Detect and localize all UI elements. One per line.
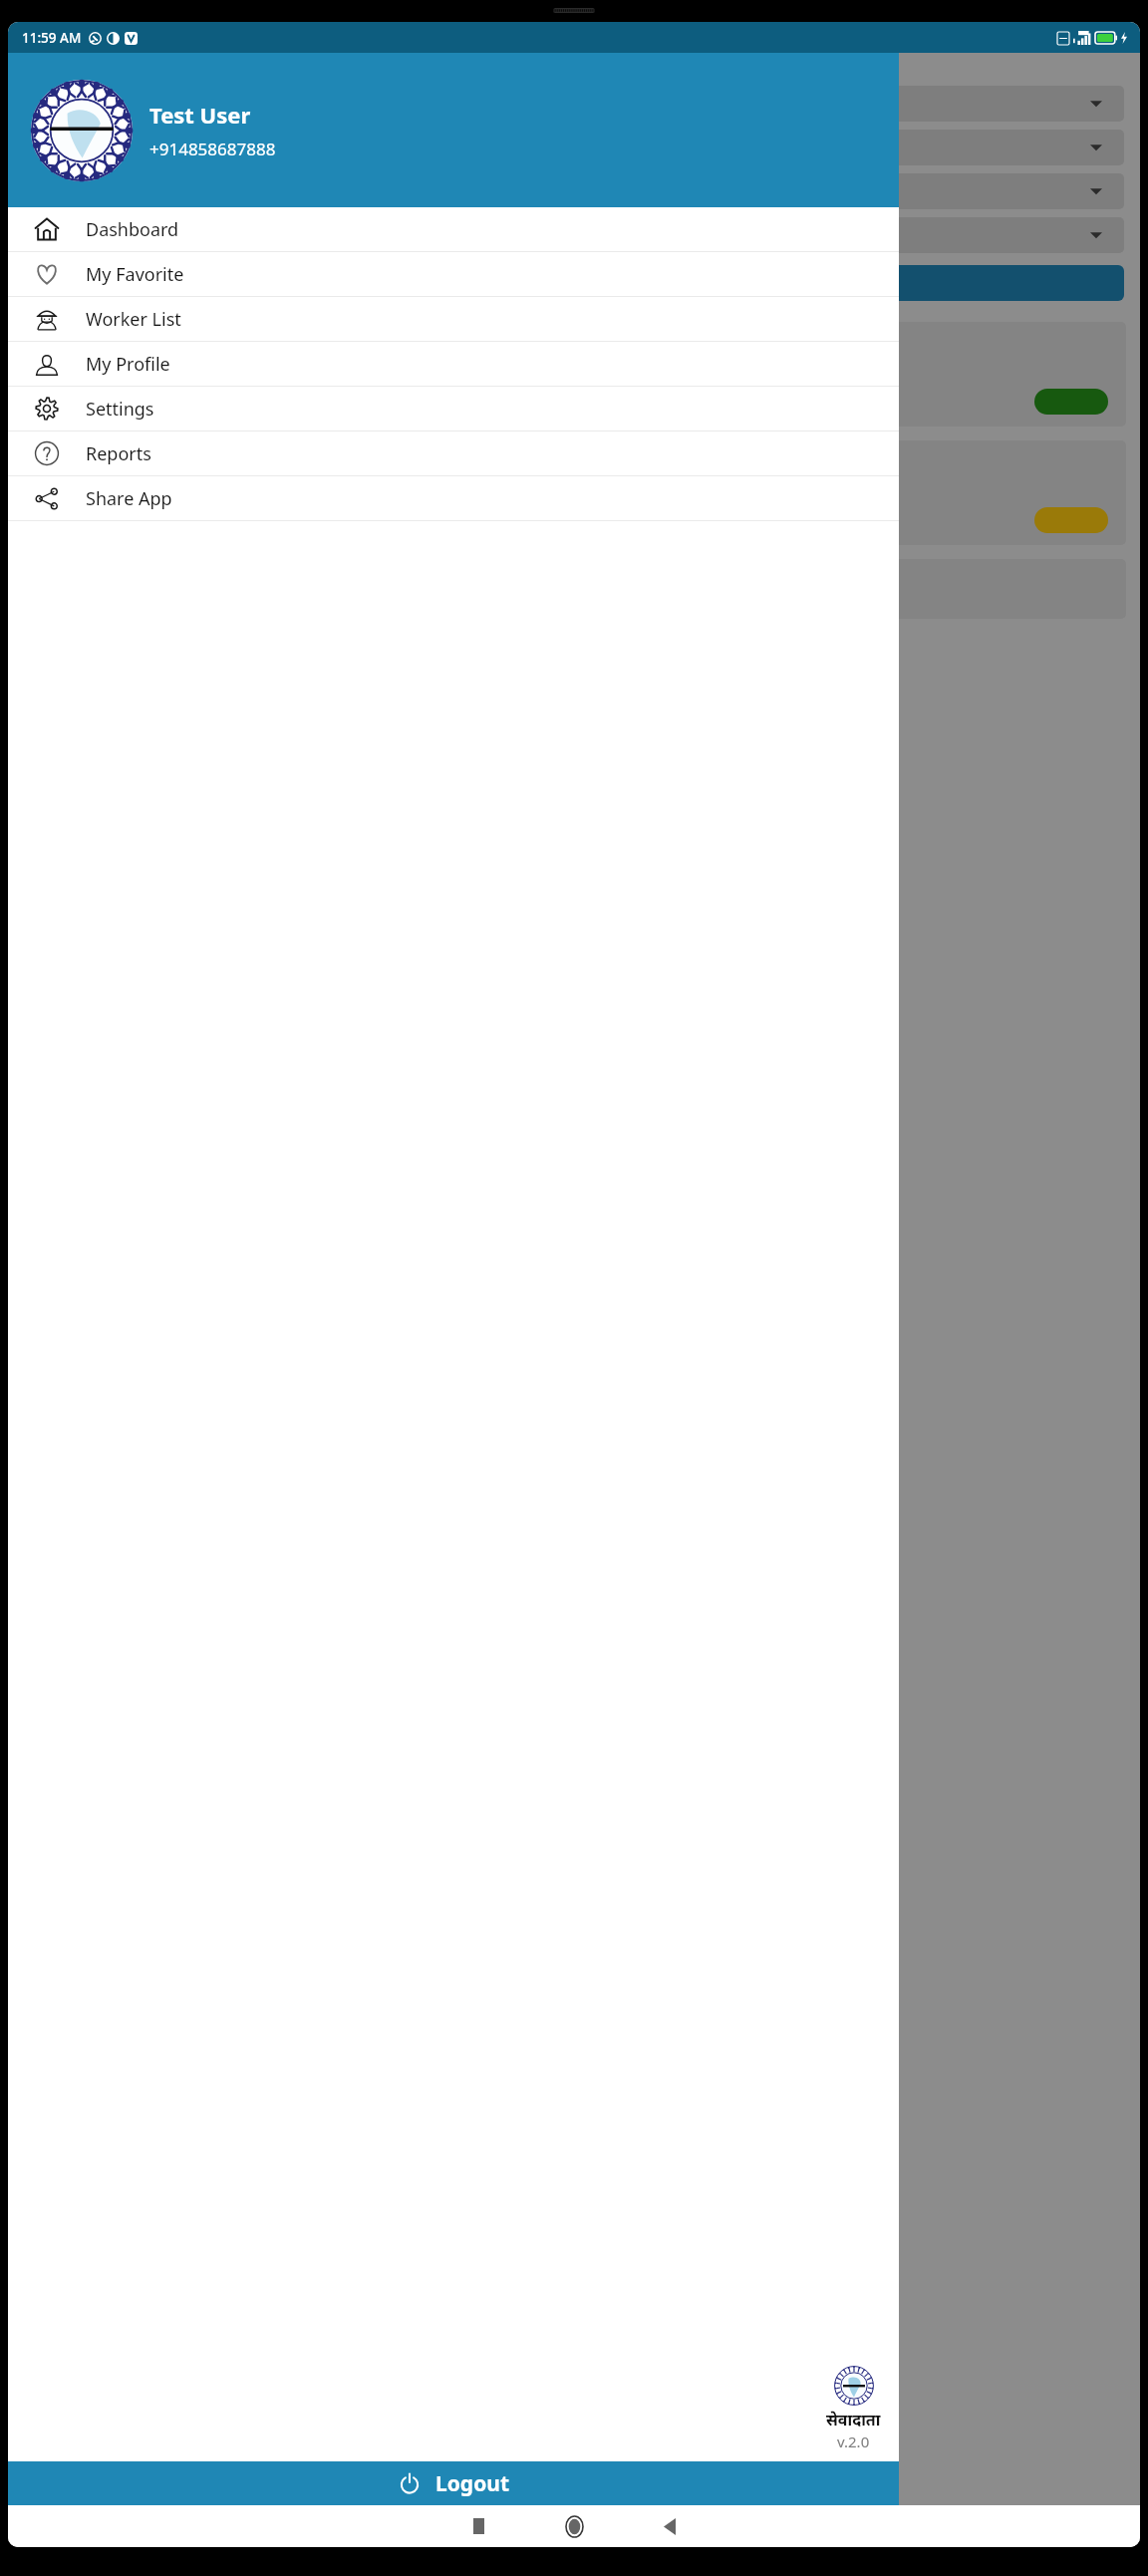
button[interactable]: Back: [643, 2505, 697, 2547]
button[interactable]: Dashboard: [8, 207, 899, 251]
staticText: +914858687888: [149, 138, 276, 160]
staticText: 11:59 AM: [22, 29, 82, 47]
staticText: My Favorite: [86, 262, 184, 287]
staticText: My Profile: [86, 352, 170, 377]
button[interactable]: Recent apps: [451, 2505, 505, 2547]
button[interactable]: Worker List: [8, 297, 899, 341]
button[interactable]: Reports: [8, 431, 899, 475]
staticText: Reports: [86, 441, 151, 466]
staticText: Test User: [149, 100, 251, 130]
staticText: Dashboard: [86, 217, 179, 242]
button[interactable]: Settings: [8, 387, 899, 430]
staticText: v.2.0: [837, 2432, 870, 2451]
staticText: Share App: [86, 486, 172, 511]
staticText: Settings: [86, 397, 154, 422]
button[interactable]: My Profile: [8, 342, 899, 386]
button[interactable]: Share App: [8, 476, 899, 520]
button[interactable]: Logout: [8, 2461, 899, 2505]
button[interactable]: Home: [547, 2505, 601, 2547]
staticText: सेवादाता: [826, 2409, 881, 2431]
staticText: Worker List: [86, 307, 181, 332]
button[interactable]: My Favorite: [8, 252, 899, 296]
staticText: Logout: [435, 2469, 510, 2498]
